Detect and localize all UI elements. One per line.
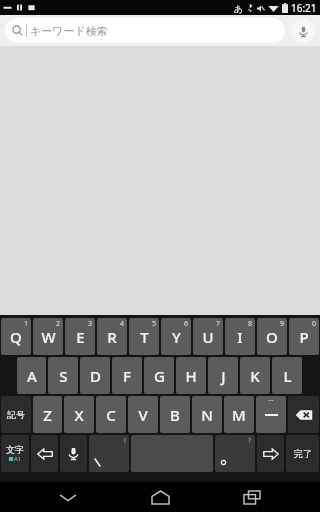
button[interactable]: 9	[257, 318, 287, 355]
staticText: N	[201, 405, 213, 425]
staticText: R	[107, 327, 117, 347]
button[interactable]: D	[80, 357, 110, 394]
staticText: ···	[268, 396, 274, 406]
button[interactable]: キーワード検索	[5, 18, 285, 43]
staticText: 5	[152, 319, 157, 329]
staticText: I	[237, 327, 243, 347]
button[interactable]: 1	[1, 318, 31, 355]
staticText: 9	[280, 319, 285, 329]
button[interactable]: M	[224, 396, 254, 433]
button[interactable]: Comma	[89, 435, 129, 472]
button[interactable]: Voice search	[291, 19, 315, 43]
staticText: 1	[24, 319, 29, 329]
button[interactable]: Cursor left	[31, 435, 58, 472]
button[interactable]: 7	[193, 318, 223, 355]
button[interactable]: 0	[289, 318, 319, 355]
staticText: Y	[172, 327, 181, 347]
button[interactable]: Dash	[256, 396, 286, 433]
button[interactable]: 6	[161, 318, 191, 355]
staticText: W	[41, 327, 56, 347]
button[interactable]: L	[272, 357, 302, 394]
staticText: S	[59, 366, 68, 386]
button[interactable]: C	[96, 396, 126, 433]
staticText: 8	[248, 319, 253, 329]
staticText: D	[90, 366, 101, 386]
button[interactable]: Voice input	[60, 435, 87, 472]
button[interactable]: 文字	[1, 435, 29, 472]
staticText: Q	[10, 327, 22, 347]
staticText: 0	[312, 319, 317, 329]
staticText: M	[232, 405, 246, 425]
button[interactable]: 記号	[1, 396, 31, 433]
staticText: J	[221, 366, 226, 386]
staticText: X	[74, 405, 84, 425]
button[interactable]: 5	[129, 318, 159, 355]
staticText: ?	[248, 436, 252, 446]
staticText: A1	[14, 455, 22, 463]
button[interactable]: G	[144, 357, 174, 394]
staticText: 4	[120, 319, 125, 329]
button[interactable]: Home	[136, 482, 184, 512]
button[interactable]: Backspace	[288, 396, 319, 433]
staticText: 完了	[294, 448, 312, 459]
staticText: K	[250, 366, 260, 386]
staticText: キーワード検索	[30, 24, 108, 38]
staticText: E	[76, 327, 85, 347]
staticText: 16:21	[291, 1, 317, 15]
button[interactable]: 2	[33, 318, 63, 355]
button[interactable]: X	[64, 396, 94, 433]
button[interactable]: V	[128, 396, 158, 433]
button[interactable]: 3	[65, 318, 95, 355]
button[interactable]: B	[160, 396, 190, 433]
staticText: U	[202, 327, 214, 347]
button[interactable]: 4	[97, 318, 127, 355]
button[interactable]: Cursor right	[257, 435, 284, 472]
button[interactable]: K	[240, 357, 270, 394]
staticText: 3	[88, 319, 93, 329]
staticText: C	[106, 405, 116, 425]
button[interactable]: Hide keyboard	[44, 482, 92, 512]
staticText: B	[170, 405, 180, 425]
staticText: V	[138, 405, 148, 425]
staticText: A	[27, 366, 37, 386]
button[interactable]: 8	[225, 318, 255, 355]
button[interactable]: A	[17, 357, 46, 394]
button[interactable]: S	[48, 357, 78, 394]
staticText: F	[123, 366, 131, 386]
staticText: あ	[234, 3, 244, 14]
staticText: T	[140, 327, 149, 347]
button[interactable]: Period	[215, 435, 255, 472]
button[interactable]: Z	[33, 396, 62, 433]
staticText: 文字	[6, 444, 24, 455]
button[interactable]: Recent apps	[228, 482, 276, 512]
button[interactable]: J	[208, 357, 238, 394]
staticText: P	[299, 327, 309, 347]
button[interactable]: F	[112, 357, 142, 394]
staticText: Z	[43, 405, 52, 425]
staticText: L	[283, 366, 292, 386]
button[interactable]: H	[176, 357, 206, 394]
staticText: !	[124, 436, 126, 446]
staticText: O	[266, 327, 278, 347]
staticText: 記号	[7, 409, 25, 420]
staticText: 6	[184, 319, 189, 329]
staticText: 2	[56, 319, 61, 329]
button[interactable]: N	[192, 396, 222, 433]
staticText: H	[185, 366, 197, 386]
button[interactable]: 完了	[286, 435, 319, 472]
staticText: 7	[216, 319, 221, 329]
staticText: G	[154, 366, 165, 386]
